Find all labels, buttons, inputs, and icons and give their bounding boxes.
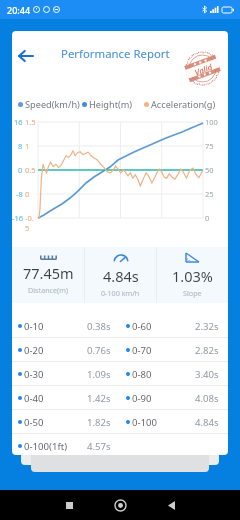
staticText: 0-70: [132, 344, 152, 357]
staticText: 20:44: [7, 4, 31, 16]
staticText: -8: [16, 189, 23, 199]
button[interactable]: Back: [12, 44, 38, 68]
staticText: Speed(km/h): [25, 98, 80, 110]
button[interactable]: 0-10: [12, 314, 120, 338]
button[interactable]: 0-80: [120, 362, 228, 386]
staticText: 4.84s: [195, 416, 219, 429]
staticText: 100: [205, 117, 218, 127]
staticText: 4.08s: [195, 392, 219, 405]
staticText: 0: [18, 165, 23, 175]
staticText: 75: [205, 141, 214, 151]
button[interactable]: 0-50: [12, 410, 120, 434]
button[interactable]: 77.45m: [12, 247, 84, 303]
staticText: 2.32s: [195, 320, 219, 333]
staticText: 4.57s: [87, 440, 111, 453]
staticText: 16: [14, 117, 23, 127]
staticText: 0-100 km/h: [101, 288, 140, 298]
staticText: 0.38s: [87, 320, 111, 333]
button[interactable]: 0-90: [120, 386, 228, 410]
staticText: Slope: [183, 288, 202, 298]
button[interactable]: 0-100: [120, 410, 228, 434]
staticText: Valid: [193, 61, 213, 76]
staticText: 0.76s: [87, 344, 111, 357]
button[interactable]: Back: [158, 492, 184, 518]
staticText: 25: [205, 189, 214, 199]
staticText: Distance(m): [28, 285, 69, 295]
staticText: 0-100: [132, 416, 158, 429]
button[interactable]: 1.03%: [157, 247, 228, 303]
staticText: 0-40: [24, 392, 44, 405]
staticText: 0: [25, 189, 30, 199]
staticText: 0-90: [132, 392, 152, 405]
staticText: 1.82s: [87, 416, 111, 429]
staticText: 0-100(1ft): [24, 440, 68, 453]
staticText: 0-80: [132, 368, 152, 381]
staticText: 3.40s: [195, 368, 219, 381]
button[interactable]: Recents: [56, 492, 82, 518]
staticText: Height(m): [89, 98, 133, 110]
staticText: 0: [205, 213, 210, 223]
button[interactable]: 0-40: [12, 386, 120, 410]
staticText: 0-60: [132, 320, 152, 333]
staticText: 1.09s: [87, 368, 111, 381]
staticText: 50: [205, 165, 214, 175]
button[interactable]: Home: [107, 492, 133, 518]
staticText: 0-10: [24, 320, 44, 333]
staticText: 0-50: [24, 416, 44, 429]
staticText: 0-20: [24, 344, 44, 357]
staticText: 0-30: [24, 368, 44, 381]
staticText: 1: [25, 141, 30, 151]
staticText: 2.82s: [195, 344, 219, 357]
staticText: 1.42s: [87, 392, 111, 405]
staticText: 1.03%: [172, 266, 213, 286]
button[interactable]: 0-30: [12, 362, 120, 386]
staticText: 77.45m: [23, 263, 74, 283]
staticText: 0.5: [25, 165, 36, 175]
staticText: -0.5: [25, 213, 37, 233]
button[interactable]: 4.84s: [85, 247, 156, 303]
button[interactable]: 0-70: [120, 338, 228, 362]
button[interactable]: 0-60: [120, 314, 228, 338]
staticText: Performance Report: [61, 46, 170, 62]
staticText: 4.84s: [103, 266, 139, 286]
button[interactable]: 0-100(1ft): [12, 434, 120, 455]
staticText: -16: [12, 213, 23, 223]
staticText: Acceleration(g): [151, 98, 216, 110]
button[interactable]: 0-20: [12, 338, 120, 362]
staticText: 8: [18, 141, 23, 151]
staticText: 1.5: [25, 117, 36, 127]
